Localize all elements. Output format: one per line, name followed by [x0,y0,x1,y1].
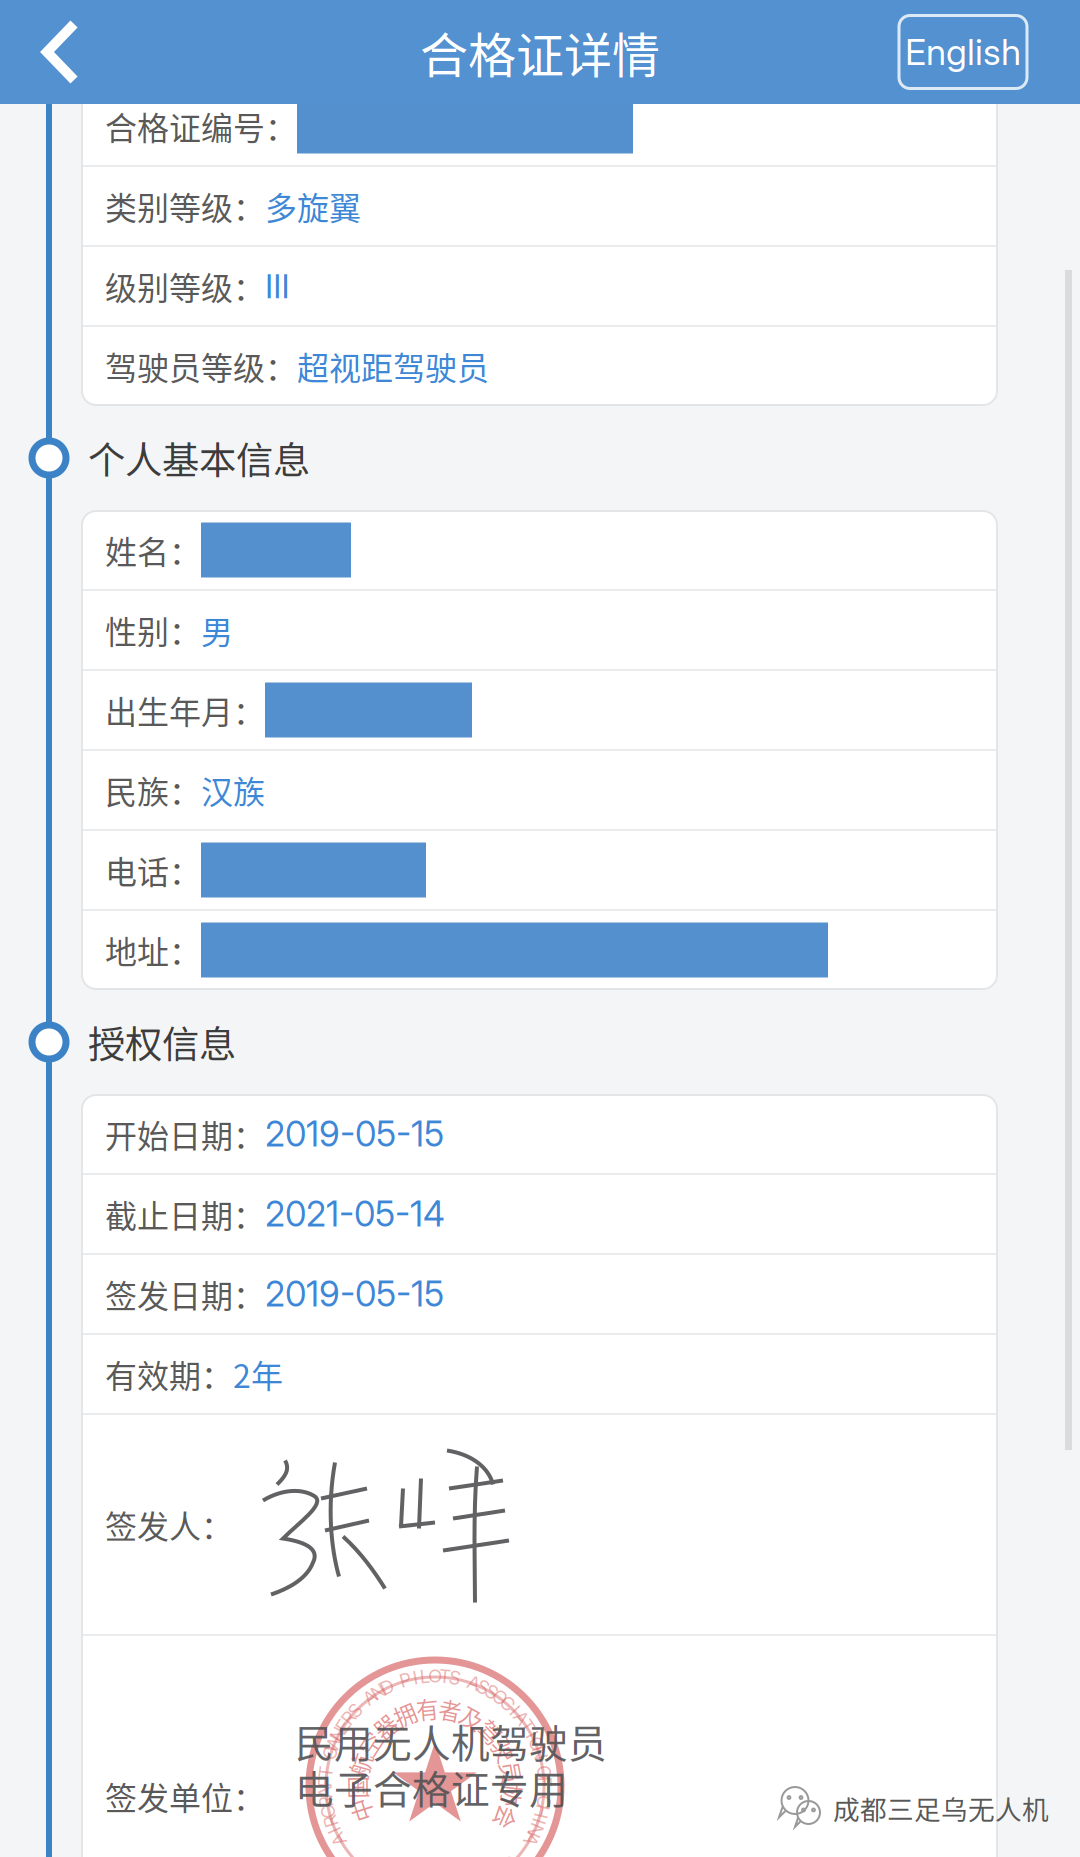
staticText: 员 [500,1756,523,1789]
staticText: 级别等级： [105,263,265,309]
staticText: 截止日期： [105,1191,265,1237]
staticText: 姓名： [105,527,201,573]
staticText: P [400,1669,412,1691]
staticText: T [320,1761,332,1783]
staticText: English [905,30,1021,74]
staticText: 授权信息 [88,1015,236,1069]
staticText: O [323,1741,337,1764]
staticText: 驶 [493,1734,516,1767]
staticText: 多旋翼 [265,183,361,229]
staticText [325,1751,330,1774]
staticText [462,1669,467,1691]
staticText [515,1845,520,1857]
staticText: 中 [349,1794,372,1826]
staticText: 有效期： [105,1351,233,1397]
staticText: I [530,1723,535,1746]
staticText: 合格证详情 [420,17,660,87]
staticText: C [501,1692,515,1715]
staticText: H [535,1800,549,1823]
staticText: I [537,1810,542,1832]
staticText: 类别等级： [105,183,265,229]
staticText: 2019-05-15 [265,1113,444,1155]
staticText: 签发单位： [105,1773,265,1819]
staticText: O [428,1664,442,1687]
staticText: S [486,1680,498,1703]
staticText: 地址： [105,927,201,973]
button[interactable]: English [899,15,1080,88]
staticText: O [493,1686,507,1708]
staticText: 男 [201,607,233,653]
staticText: 电话： [105,847,201,893]
staticText: F [539,1771,550,1793]
staticText: N [533,1741,547,1764]
staticText: 2年 [233,1351,283,1397]
staticText: A [363,1686,376,1708]
staticText: A [515,1707,528,1729]
button[interactable]: Back [0,0,106,104]
staticText: A [318,1781,331,1803]
staticText: 性别： [105,607,201,653]
staticText: O [529,1732,543,1755]
staticText: I [512,1699,517,1722]
staticText: 会 [495,1801,518,1834]
staticText: R [343,1707,355,1729]
staticText: 超视距驾驶员 [297,343,489,389]
staticText: 民用无人机驾驶员 [295,1713,607,1769]
staticText: I [413,1666,418,1689]
staticText: A [467,1672,480,1694]
staticText: 者 [439,1693,462,1726]
staticText: 2021-05-14 [265,1193,445,1235]
staticText: 个人基本信息 [88,431,310,485]
staticText [394,1672,399,1694]
staticText: 签发人： [105,1501,233,1548]
staticText: S [349,1699,361,1722]
staticText: R [325,1810,337,1832]
staticText: I [332,1819,337,1842]
staticText [542,1781,547,1803]
staticText: 合格证编号： [105,103,297,149]
staticText: 汉族 [201,767,265,813]
staticText: A [332,1828,345,1851]
staticText: 开始日期： [105,1111,265,1157]
staticText: 2019-05-15 [265,1273,444,1315]
staticText: T [521,1715,533,1737]
staticText: C [321,1800,335,1823]
staticText: L [420,1665,431,1688]
staticText: C [537,1791,551,1813]
staticText: 驾 [479,1715,502,1748]
staticText: 民族： [105,767,201,813]
staticText: E [337,1715,348,1737]
staticText: 及 [461,1701,484,1734]
staticText: O [537,1761,551,1783]
staticText: N [331,1723,345,1746]
staticText: 出生年月： [105,687,265,733]
staticText: 器 [374,1710,397,1742]
staticText: 拥 [393,1698,416,1730]
staticText: 电子合格证专用 [295,1759,568,1815]
staticText: N [529,1819,543,1842]
staticText: F [319,1771,330,1793]
staticText: R [320,1791,332,1813]
staticText: D [380,1676,393,1698]
staticText: 2 [506,1852,517,1857]
staticText: 成都三足乌无人机 [833,1789,1049,1827]
staticText [540,1751,545,1774]
staticText: S [477,1676,489,1698]
staticText: 空 [358,1727,381,1760]
staticText: S [449,1666,461,1689]
staticText: 国 [345,1771,368,1804]
staticText: T [439,1665,451,1688]
staticText: Ⅲ [265,266,290,306]
staticText: 有 [416,1692,439,1725]
staticText: 驾驶员等级： [105,343,297,389]
staticText: 协 [501,1779,524,1812]
staticText [360,1692,365,1715]
staticText: N [371,1680,385,1703]
staticText: A [525,1828,538,1851]
staticText: W [324,1732,342,1755]
staticText: 航 [348,1748,371,1781]
staticText: 签发日期： [105,1271,265,1317]
